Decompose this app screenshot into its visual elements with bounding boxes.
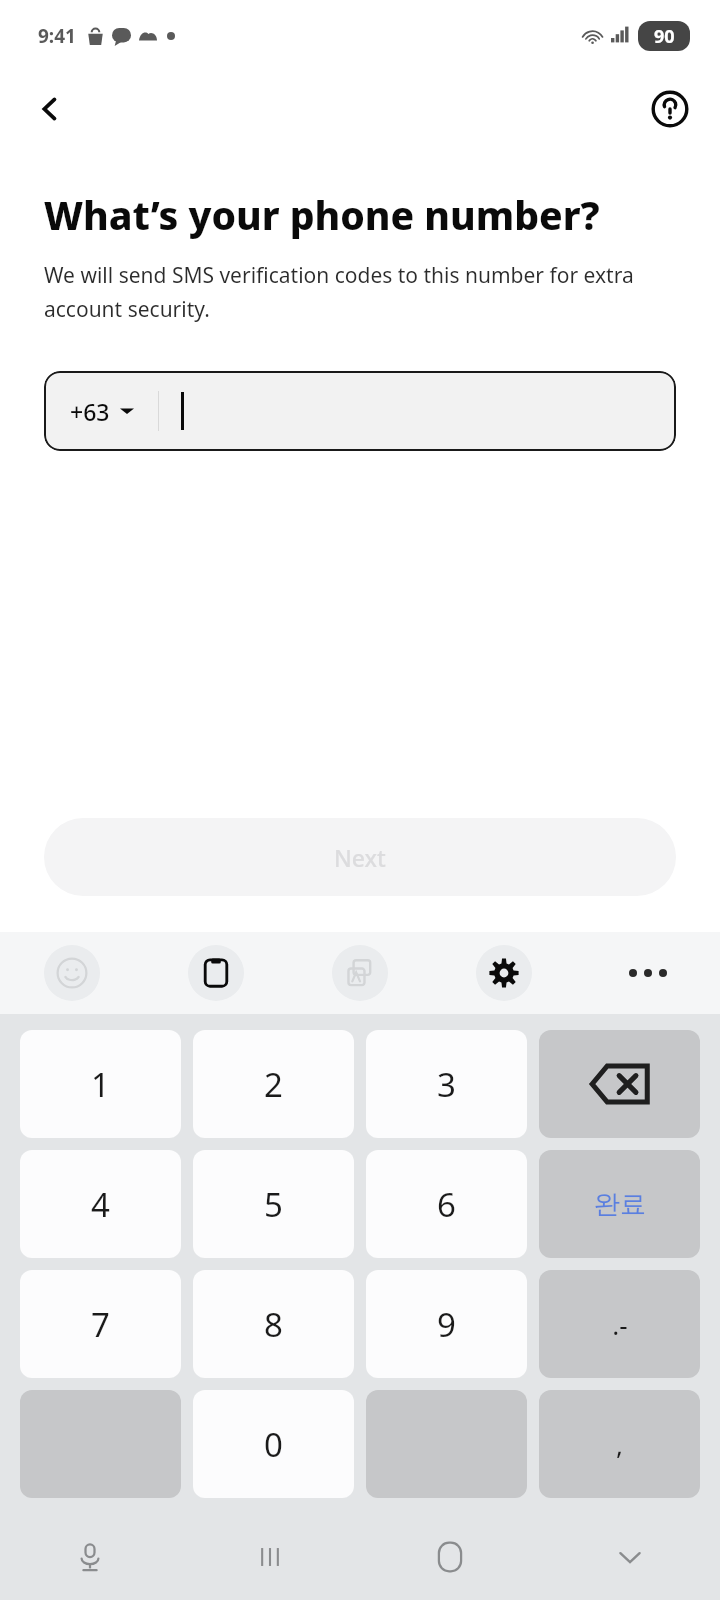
staticText: 완료: [594, 1188, 646, 1221]
button[interactable]: Home: [360, 1514, 540, 1600]
button[interactable]: 4: [20, 1150, 181, 1258]
button[interactable]: .-: [539, 1270, 700, 1378]
button[interactable]: 0: [193, 1390, 354, 1498]
staticText: 8: [264, 1302, 283, 1347]
button[interactable]: More options: [576, 932, 720, 1014]
button[interactable]: 1: [20, 1030, 181, 1138]
staticText: 9:41: [38, 23, 76, 49]
button[interactable]: 7: [20, 1270, 181, 1378]
button[interactable]: Help: [642, 81, 698, 137]
button[interactable]: Recent apps: [180, 1514, 360, 1600]
staticText: What’s your phone number?: [44, 188, 600, 241]
button[interactable]: 3: [366, 1030, 527, 1138]
staticText: We will send SMS verification codes to t…: [44, 261, 676, 323]
staticText: 9: [437, 1302, 456, 1347]
button[interactable]: Emoji: [0, 932, 144, 1014]
staticText: 1: [91, 1062, 110, 1107]
button[interactable]: Clipboard: [144, 932, 288, 1014]
button[interactable]: 2: [193, 1030, 354, 1138]
staticText: 7: [91, 1302, 110, 1347]
staticText: 4: [91, 1182, 110, 1227]
button[interactable]: Backspace: [539, 1030, 700, 1138]
staticText: Next: [334, 842, 386, 873]
staticText: 5: [264, 1182, 283, 1227]
staticText: 90: [654, 24, 675, 49]
button[interactable]: 완료: [539, 1150, 700, 1258]
staticText: 0: [264, 1422, 283, 1467]
staticText: 6: [437, 1182, 456, 1227]
staticText: +63: [70, 396, 110, 427]
button[interactable]: 6: [366, 1150, 527, 1258]
button[interactable]: Back: [22, 81, 78, 137]
staticText: 2: [264, 1062, 283, 1107]
button[interactable]: 9: [366, 1270, 527, 1378]
staticText: 3: [437, 1062, 456, 1107]
button[interactable]: Translate: [288, 932, 432, 1014]
staticText: .-: [612, 1307, 628, 1342]
button[interactable]: +63: [44, 371, 676, 451]
button[interactable]: 5: [193, 1150, 354, 1258]
staticText: ,: [616, 1427, 623, 1462]
button[interactable]: Voice input: [0, 1514, 180, 1600]
button[interactable]: Keyboard settings: [432, 932, 576, 1014]
button[interactable]: 8: [193, 1270, 354, 1378]
button[interactable]: ,: [539, 1390, 700, 1498]
button[interactable]: Hide keyboard: [540, 1514, 720, 1600]
